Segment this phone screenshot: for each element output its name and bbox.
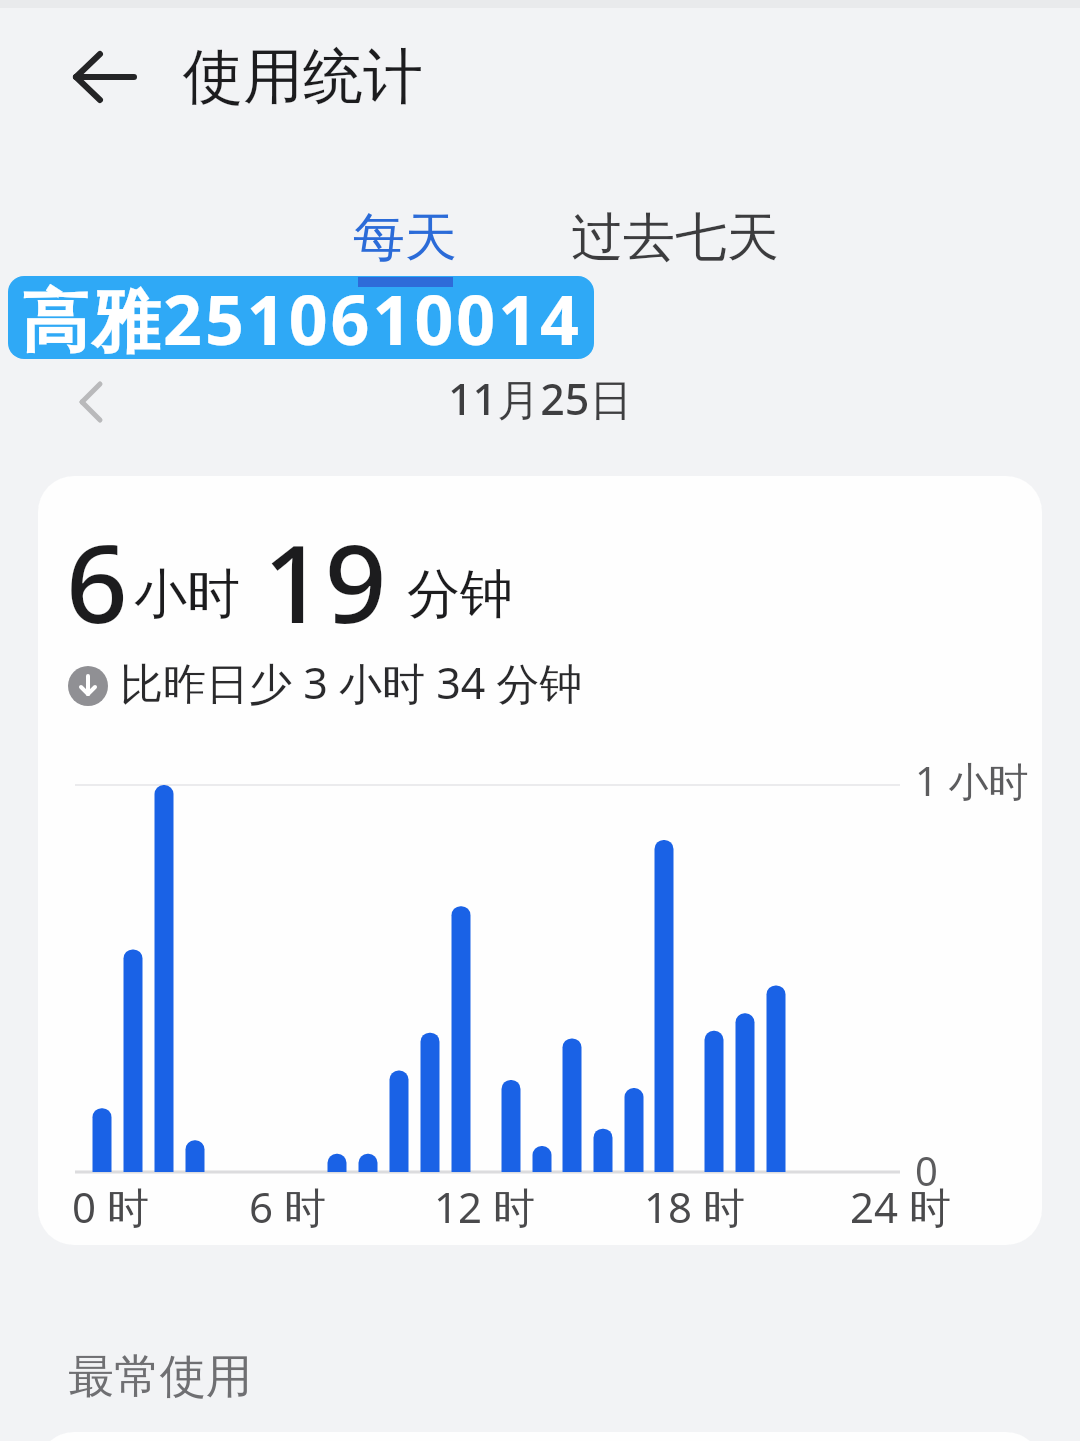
staticText: 11月25日 <box>448 369 633 428</box>
button[interactable]: 每天 <box>330 196 480 280</box>
staticText: 高雅2510610014 <box>21 276 582 355</box>
staticText: 比昨日少 3 小时 34 分钟 <box>120 653 583 712</box>
staticText: 24 时 <box>850 1178 951 1235</box>
staticText: 小时 <box>134 561 240 628</box>
button[interactable]: 过去七天 <box>560 196 790 280</box>
button[interactable] <box>70 50 140 104</box>
staticText: 0 时 <box>72 1178 149 1235</box>
staticText: 6 <box>66 508 128 655</box>
staticText: 分钟 <box>407 561 513 628</box>
staticText: 6 时 <box>249 1178 326 1235</box>
staticText: 12 时 <box>434 1178 535 1235</box>
staticText: 19 <box>263 508 387 655</box>
staticText: 过去七天 <box>571 205 779 271</box>
staticText: 18 时 <box>644 1178 745 1235</box>
staticText: 最常使用 <box>68 1348 252 1406</box>
staticText: 1 小时 <box>915 753 1029 808</box>
staticText: 每天 <box>353 205 457 271</box>
staticText: 使用统计 <box>183 39 423 115</box>
staticText: 0 <box>915 1143 938 1197</box>
button[interactable] <box>78 382 104 422</box>
